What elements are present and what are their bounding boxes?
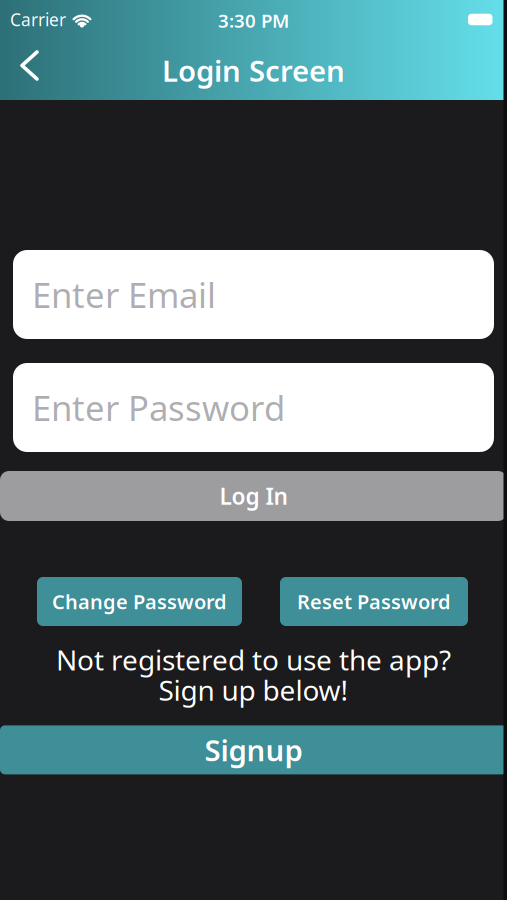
staticText: Log In [219, 481, 287, 511]
staticText: Enter Email [32, 271, 216, 317]
staticText: Sign up below! [158, 671, 348, 708]
staticText: Login Screen [162, 51, 345, 90]
button[interactable]: Back [0, 0, 37, 79]
staticText: 3:30 PM [218, 8, 289, 33]
button[interactable]: Log In [0, 471, 507, 521]
staticText: Signup [204, 730, 302, 769]
staticText: Change Password [52, 588, 227, 615]
staticText: Carrier [10, 8, 66, 31]
staticText: Enter Password [32, 384, 285, 430]
button[interactable]: Reset Password [280, 577, 468, 626]
staticText: Not registered to use the app? [56, 641, 451, 678]
staticText: Reset Password [297, 588, 451, 615]
button[interactable]: Change Password [37, 577, 242, 626]
button[interactable]: Signup [0, 725, 507, 774]
